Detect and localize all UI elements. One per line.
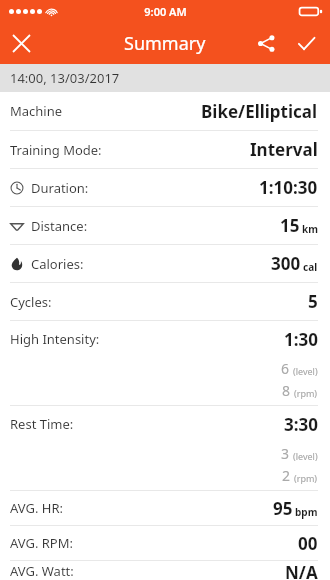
staticText: 1:10:30	[259, 176, 318, 199]
button[interactable]: Distance:	[0, 207, 330, 245]
staticText: N/A	[285, 561, 318, 580]
staticText: 95	[273, 497, 293, 520]
staticText: Bike/Elliptical	[201, 100, 318, 123]
staticText: 14:00, 13/03/2017	[10, 69, 120, 87]
staticText: Distance:	[31, 217, 88, 235]
button[interactable]: AVG. RPM:	[0, 526, 330, 561]
staticText: Machine	[10, 102, 63, 120]
staticText: AVG. RPM:	[10, 534, 74, 552]
staticText: Summary	[124, 31, 206, 56]
button[interactable]: Rest Time:	[0, 406, 330, 491]
staticText: (rpm)	[294, 387, 318, 399]
staticText: bpm	[295, 505, 318, 519]
button[interactable]: Calories:	[0, 245, 330, 283]
staticText: Interval	[250, 138, 318, 161]
staticText: (rpm)	[294, 472, 318, 484]
button[interactable]: Close	[0, 22, 42, 64]
button[interactable]: Machine	[0, 92, 330, 131]
staticText: 8	[282, 381, 291, 400]
staticText: High Intensity:	[10, 330, 100, 348]
staticText: 9:00 AM	[144, 4, 187, 19]
staticText: Cycles:	[10, 293, 52, 311]
staticText: Training Mode:	[10, 141, 102, 159]
button[interactable]: Cycles:	[0, 283, 330, 321]
staticText: AVG. Watt:	[10, 562, 74, 580]
staticText: Calories:	[31, 255, 84, 273]
staticText: AVG. HR:	[10, 499, 63, 517]
staticText: 3	[281, 444, 290, 463]
button[interactable]: Confirm	[286, 23, 326, 63]
staticText: (level)	[293, 365, 318, 377]
staticText: km	[302, 222, 318, 236]
staticText: 5	[308, 290, 318, 313]
staticText: 00	[298, 532, 318, 555]
staticText: 3:30	[284, 413, 318, 436]
button[interactable]: High Intensity:	[0, 321, 330, 406]
staticText: 15	[280, 214, 300, 237]
staticText: (level)	[293, 450, 318, 462]
button[interactable]: Duration:	[0, 169, 330, 207]
staticText: 300	[271, 252, 301, 275]
staticText: 2	[282, 466, 291, 485]
button[interactable]: Training Mode:	[0, 131, 330, 169]
staticText: 1:30	[284, 328, 318, 351]
button[interactable]: AVG. HR:	[0, 491, 330, 526]
staticText: Duration:	[31, 179, 89, 197]
staticText: Rest Time:	[10, 415, 74, 433]
button[interactable]: Share	[246, 23, 286, 63]
button[interactable]: AVG. Watt:	[0, 561, 330, 580]
staticText: 6	[281, 359, 290, 378]
staticText: cal	[303, 260, 318, 274]
